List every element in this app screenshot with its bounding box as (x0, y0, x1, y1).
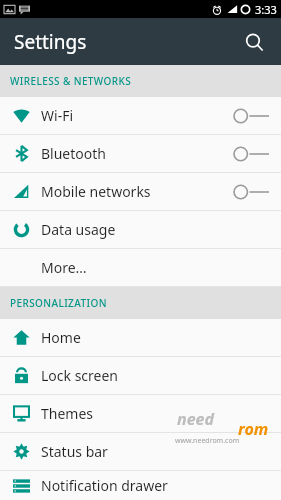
button[interactable]: Themes (0, 395, 281, 432)
staticText: 3:33 (255, 2, 277, 17)
staticText: Lock screen (41, 366, 119, 385)
staticText: Wi-Fi (41, 106, 74, 125)
staticText: Data usage (41, 220, 116, 239)
staticText: Themes (41, 404, 94, 423)
other: Wi-Fi toggle (233, 104, 269, 128)
staticText: More… (41, 258, 87, 277)
staticText: need (177, 408, 214, 430)
button[interactable]: Wi-Fi (0, 97, 281, 134)
button[interactable]: Notification drawer (0, 471, 281, 500)
staticText: Home (41, 328, 81, 347)
other: Bluetooth toggle (233, 142, 269, 166)
button[interactable]: Status bar (0, 433, 281, 470)
staticText: rom (238, 418, 269, 440)
staticText: WIRELESS & NETWORKS (10, 74, 132, 88)
button[interactable]: Lock screen (0, 357, 281, 394)
staticText: Settings (14, 29, 87, 55)
staticText: Notification drawer (41, 476, 168, 495)
staticText: www.needrom.com (175, 436, 240, 446)
button[interactable]: More… (0, 249, 281, 286)
button[interactable]: Home (0, 319, 281, 356)
other: Mobile networks toggle (233, 180, 269, 204)
button[interactable]: Data usage (0, 211, 281, 248)
staticText: Bluetooth (41, 144, 106, 163)
staticText: Mobile networks (41, 182, 151, 201)
staticText: PERSONALIZATION (10, 296, 107, 310)
button[interactable]: Settings (14, 29, 87, 55)
button[interactable]: Mobile networks (0, 173, 281, 210)
staticText: Status bar (41, 442, 108, 461)
button[interactable]: Search (235, 23, 273, 61)
button[interactable]: Bluetooth (0, 135, 281, 172)
